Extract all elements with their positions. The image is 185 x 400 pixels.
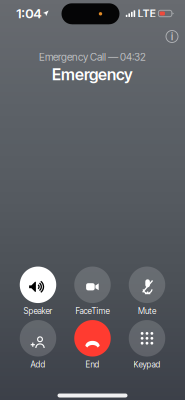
staticText: 1:04	[16, 5, 41, 21]
button[interactable]: Add	[11, 320, 65, 369]
staticText: Mute	[138, 306, 156, 316]
button[interactable]: End	[65, 320, 119, 369]
button[interactable]: FaceTime	[65, 266, 119, 316]
button[interactable]: Keypad	[120, 320, 174, 369]
staticText: Keypad	[133, 359, 160, 369]
staticText: Emergency	[52, 65, 133, 84]
staticText: LTE	[138, 7, 156, 20]
button[interactable]: Speaker	[11, 266, 65, 316]
staticText: i	[171, 30, 173, 43]
staticText: FaceTime	[75, 306, 109, 316]
staticText: Add	[30, 359, 45, 369]
staticText: Speaker	[23, 306, 52, 316]
button[interactable]: Call details	[161, 25, 183, 47]
button[interactable]: Mute	[120, 266, 174, 316]
staticText: End	[85, 359, 99, 369]
staticText: Emergency Call — 04:32	[39, 51, 146, 63]
